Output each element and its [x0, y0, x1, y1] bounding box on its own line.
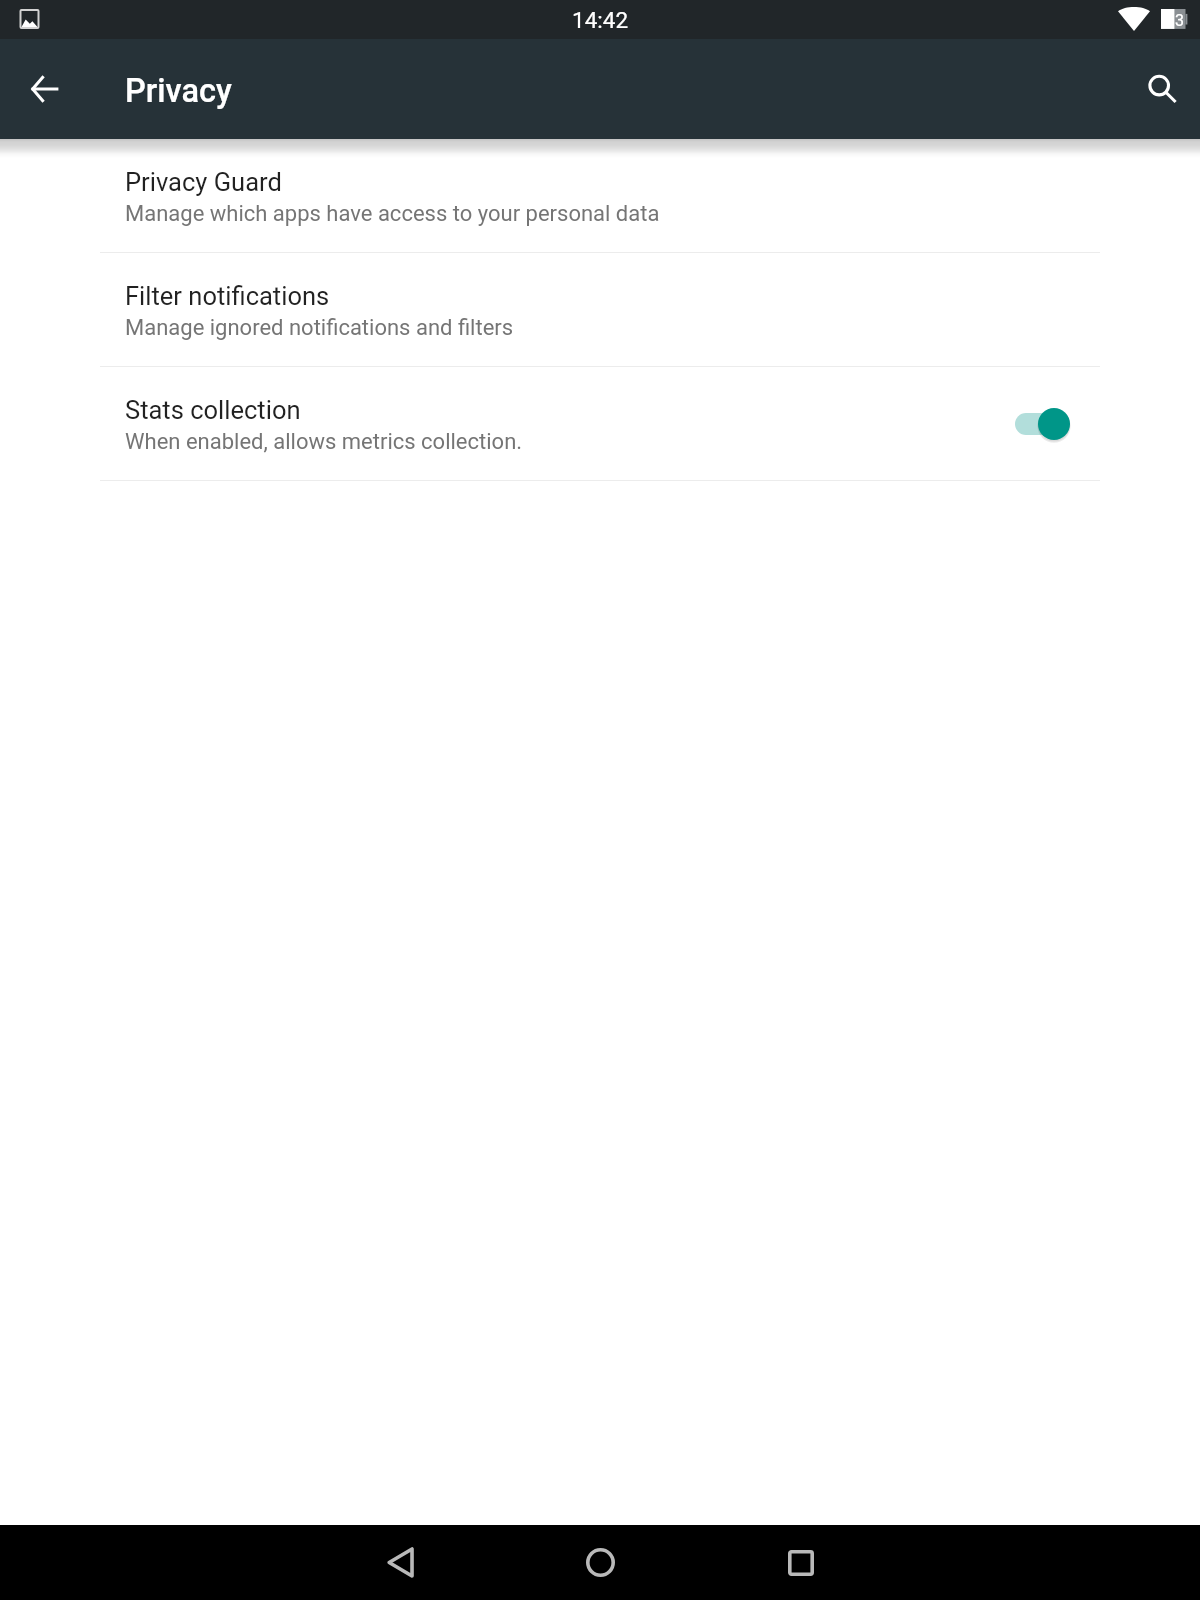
button[interactable]: Home	[563, 1525, 638, 1600]
button[interactable]: Stats collection toggle	[1015, 404, 1071, 444]
button[interactable]: Navigate up	[6, 50, 84, 128]
staticText: Manage ignored notifications and filters	[125, 315, 514, 341]
staticText: 14:42	[572, 7, 629, 33]
staticText: 3	[1175, 11, 1184, 30]
staticText: When enabled, allows metrics collection.	[125, 429, 523, 455]
staticText: Stats collection	[125, 395, 301, 425]
button[interactable]: Recent apps	[763, 1525, 838, 1600]
staticText: Privacy Guard	[125, 167, 282, 197]
button[interactable]: Privacy Guard	[0, 139, 1200, 253]
button[interactable]: Search	[1123, 50, 1200, 128]
button[interactable]: Stats collection	[0, 367, 1200, 481]
button[interactable]: Back	[363, 1525, 438, 1600]
staticText: Manage which apps have access to your pe…	[125, 201, 660, 227]
button[interactable]: Filter notifications	[0, 253, 1200, 367]
staticText: Privacy	[125, 72, 232, 110]
staticText: Filter notifications	[125, 281, 330, 311]
